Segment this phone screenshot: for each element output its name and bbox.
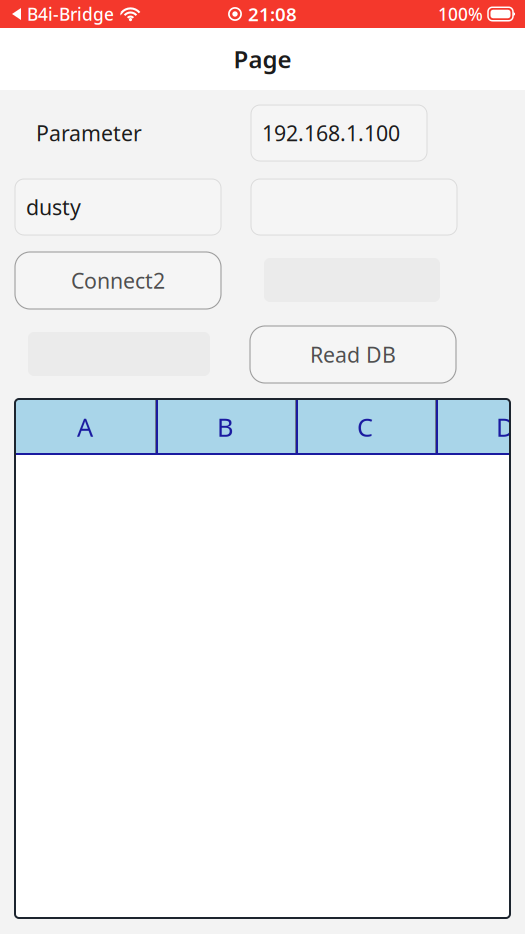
staticText: C xyxy=(357,410,373,444)
staticText: B xyxy=(217,410,233,444)
staticText: 100% xyxy=(438,2,483,25)
staticText: 192.168.1.100 xyxy=(262,119,400,147)
button[interactable]: Connect2 xyxy=(15,252,221,309)
staticText: Connect2 xyxy=(71,266,165,295)
staticText: Page xyxy=(233,43,291,75)
button[interactable]: Read DB xyxy=(250,326,456,383)
staticText: B4i-Bridge xyxy=(27,2,114,25)
staticText: dusty xyxy=(26,193,81,221)
button[interactable]: Server address xyxy=(251,105,427,161)
staticText: D xyxy=(496,410,514,444)
staticText: Parameter xyxy=(36,119,142,147)
button[interactable]: User name xyxy=(15,179,221,235)
staticText: Read DB xyxy=(310,340,396,369)
staticText: A xyxy=(77,410,93,444)
staticText: 21:08 xyxy=(248,2,297,26)
